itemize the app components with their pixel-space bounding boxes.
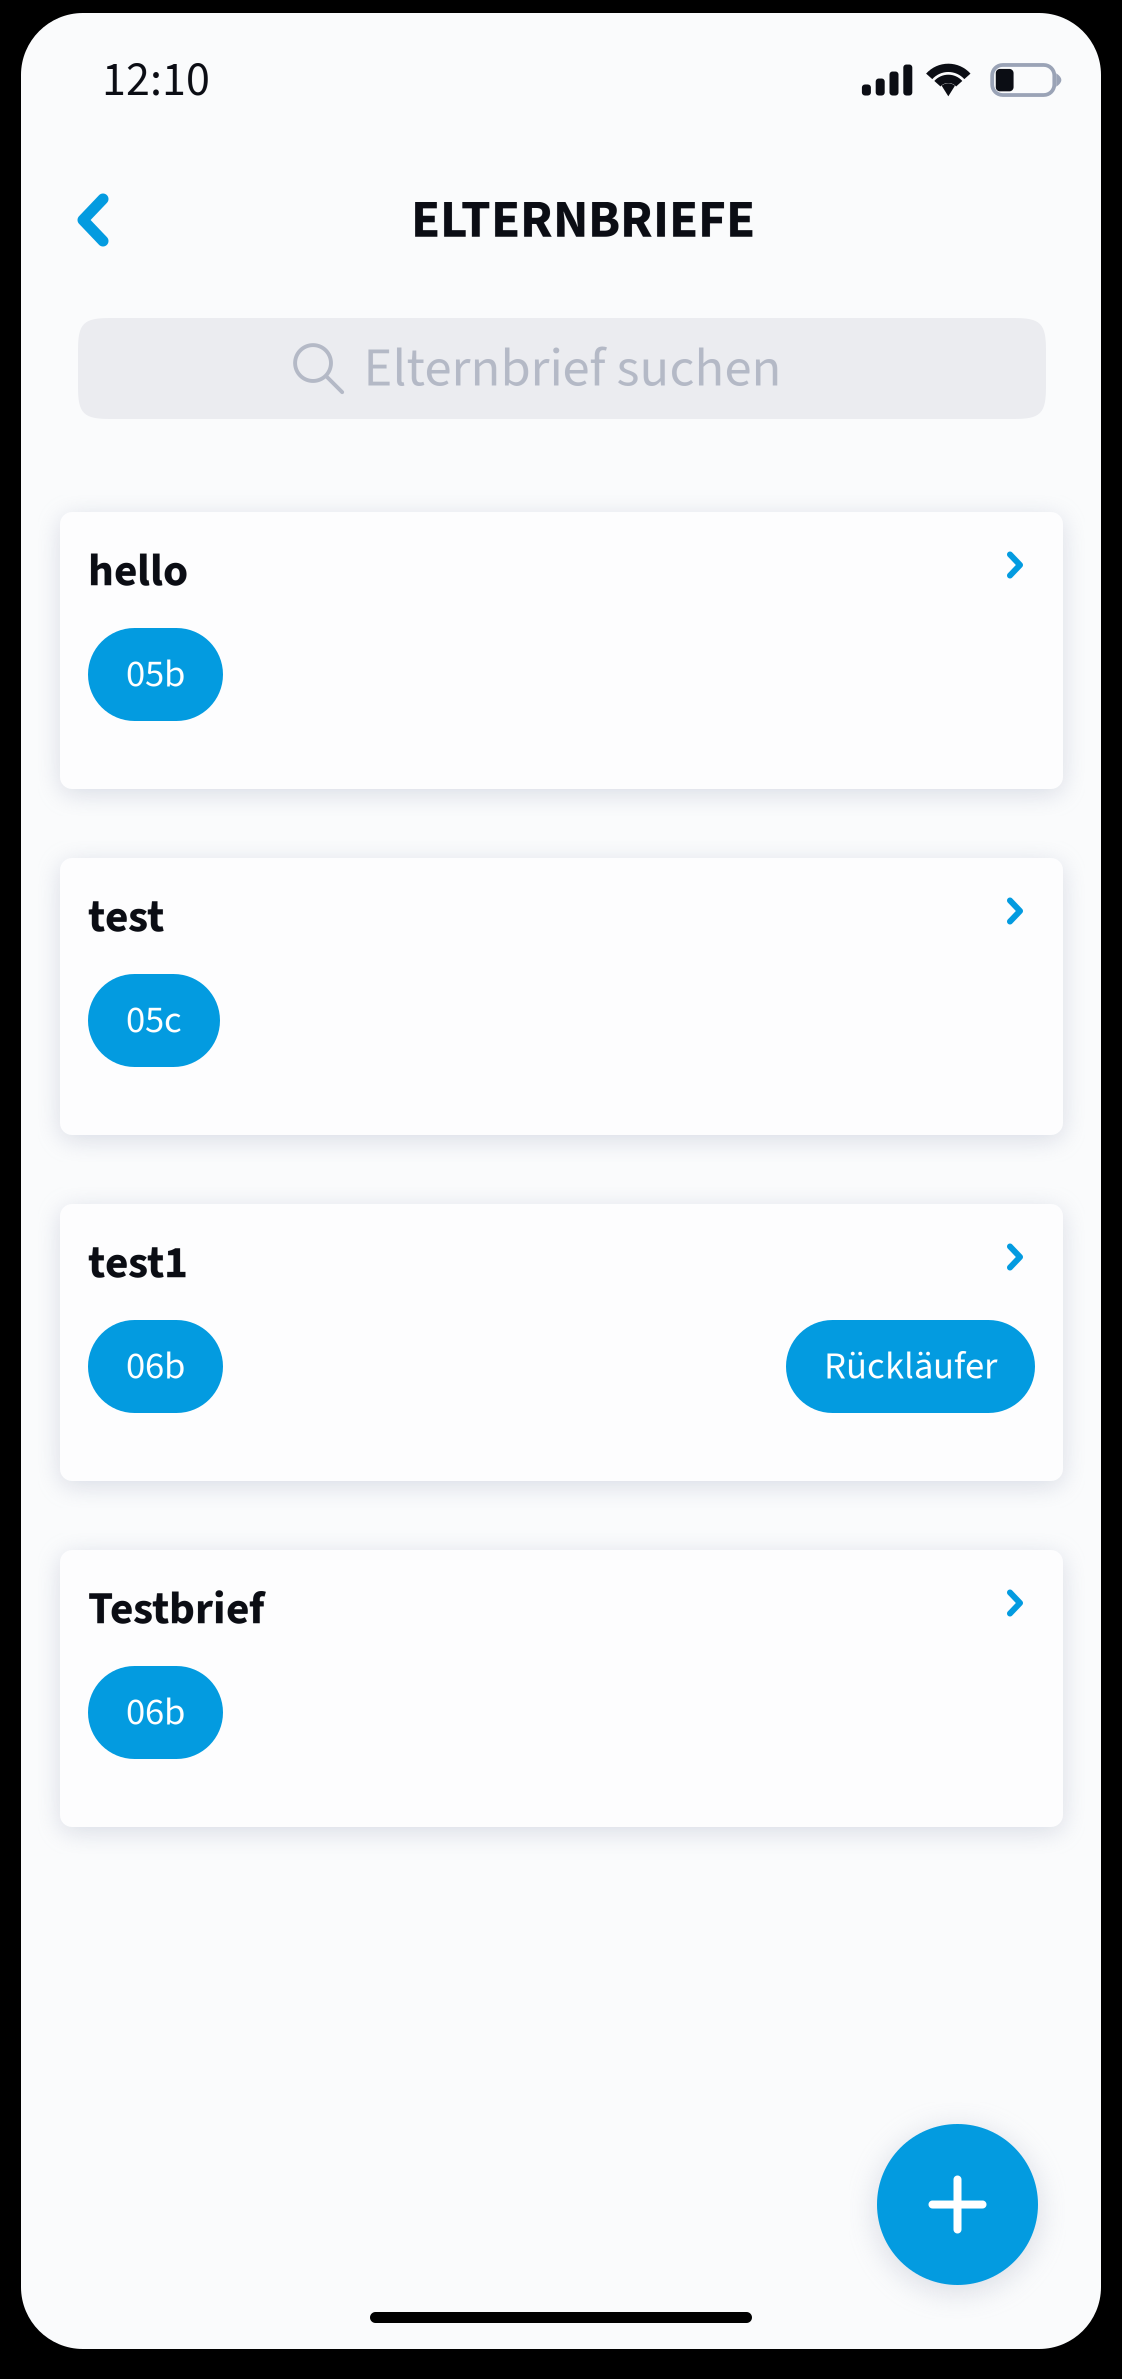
button[interactable]: test [60, 858, 1063, 1135]
staticText: hello [88, 539, 188, 603]
staticText: Elternbrief suchen [363, 330, 781, 407]
staticText: 12:10 [102, 46, 210, 114]
staticText: 05b [126, 647, 185, 702]
staticText: Rückläufer [824, 1339, 997, 1394]
button[interactable]: Neuen Elternbrief erstellen [877, 2124, 1038, 2285]
staticText: 05c [126, 993, 182, 1048]
staticText: Testbrief [88, 1577, 264, 1641]
staticText: 06b [126, 1339, 185, 1394]
button[interactable]: Zurück [43, 165, 143, 275]
button[interactable]: Elternbrief suchen [78, 318, 1046, 419]
staticText: 06b [126, 1685, 185, 1740]
staticText: ELTERNBRIEFE [411, 182, 755, 258]
button[interactable]: Testbrief [60, 1550, 1063, 1827]
staticText: test1 [88, 1231, 188, 1295]
button[interactable]: test1 [60, 1204, 1063, 1481]
button[interactable]: hello [60, 512, 1063, 789]
staticText: test [88, 885, 164, 949]
